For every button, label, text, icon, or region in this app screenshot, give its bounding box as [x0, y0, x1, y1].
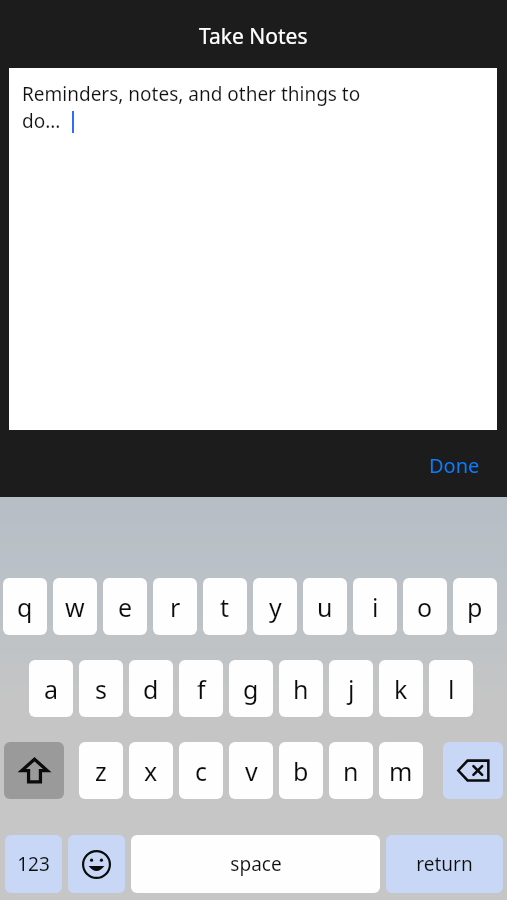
button[interactable]: r — [153, 578, 197, 635]
button[interactable]: d — [129, 660, 173, 717]
button[interactable]: e — [103, 578, 147, 635]
button[interactable]: x — [129, 742, 173, 799]
button[interactable]: Backspace — [443, 742, 503, 799]
button[interactable]: f — [179, 660, 223, 717]
button[interactable]: u — [303, 578, 347, 635]
button[interactable]: b — [279, 742, 323, 799]
staticText: e — [118, 590, 133, 624]
staticText: q — [17, 590, 33, 624]
button[interactable]: h — [279, 660, 323, 717]
button[interactable]: Reminders, notes, and other things to do… — [9, 68, 497, 430]
button[interactable]: a — [29, 660, 73, 717]
button[interactable]: l — [429, 660, 473, 717]
button[interactable]: 123 — [5, 835, 62, 893]
staticText: j — [348, 672, 355, 706]
button[interactable]: return — [386, 835, 503, 893]
staticText: l — [448, 672, 455, 706]
button[interactable]: Emoji — [68, 835, 125, 893]
button[interactable]: m — [379, 742, 423, 799]
button[interactable]: q — [3, 578, 47, 635]
staticText: Take Notes — [199, 22, 308, 51]
button[interactable]: Done — [411, 443, 497, 487]
staticText: Done — [429, 452, 480, 479]
button[interactable]: c — [179, 742, 223, 799]
staticText: a — [44, 672, 59, 706]
button[interactable]: n — [329, 742, 373, 799]
staticText: m — [389, 754, 413, 788]
staticText: t — [220, 590, 230, 624]
button[interactable]: z — [79, 742, 123, 799]
staticText: c — [195, 754, 208, 788]
staticText: o — [417, 590, 433, 624]
button[interactable]: k — [379, 660, 423, 717]
button[interactable]: p — [453, 578, 497, 635]
staticText: Reminders, notes, and other things to do… — [22, 81, 361, 134]
staticText: x — [144, 754, 158, 788]
button[interactable]: y — [253, 578, 297, 635]
button[interactable]: j — [329, 660, 373, 717]
button[interactable]: v — [229, 742, 273, 799]
staticText: s — [95, 672, 107, 706]
staticText: k — [394, 672, 408, 706]
button[interactable]: t — [203, 578, 247, 635]
staticText: d — [143, 672, 159, 706]
staticText: y — [269, 590, 282, 624]
button[interactable]: Shift — [4, 742, 64, 799]
staticText: f — [197, 672, 206, 706]
staticText: h — [293, 672, 309, 706]
button[interactable]: w — [53, 578, 97, 635]
staticText: 123 — [17, 851, 50, 877]
button[interactable]: g — [229, 660, 273, 717]
staticText: g — [243, 672, 259, 706]
staticText: return — [416, 851, 473, 877]
staticText: n — [343, 754, 359, 788]
staticText: b — [293, 754, 309, 788]
staticText: u — [317, 590, 333, 624]
button[interactable]: i — [353, 578, 397, 635]
staticText: i — [372, 590, 379, 624]
staticText: p — [467, 590, 483, 624]
button[interactable]: space — [131, 835, 380, 893]
staticText: space — [230, 851, 282, 877]
staticText: w — [65, 590, 85, 624]
button[interactable]: o — [403, 578, 447, 635]
staticText: r — [170, 590, 181, 624]
button[interactable]: s — [79, 660, 123, 717]
staticText: v — [245, 754, 258, 788]
staticText: z — [95, 754, 107, 788]
